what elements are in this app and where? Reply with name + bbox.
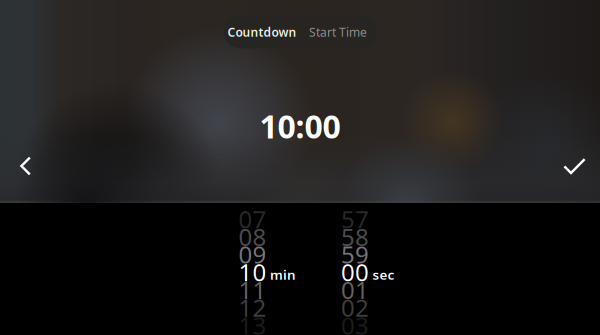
staticText: 12 bbox=[238, 291, 266, 323]
staticText: min bbox=[270, 266, 296, 283]
staticText: 58 bbox=[341, 221, 369, 253]
staticText: 11 bbox=[238, 274, 266, 306]
staticText: 59 bbox=[341, 238, 369, 270]
staticText: 57 bbox=[341, 203, 369, 235]
staticText: 08 bbox=[238, 221, 266, 253]
staticText: 00 bbox=[341, 256, 369, 288]
staticText: 01 bbox=[341, 274, 369, 306]
staticText: sec bbox=[372, 266, 394, 283]
staticText: 03 bbox=[341, 309, 369, 335]
staticText: 09 bbox=[238, 238, 266, 270]
staticText: 13 bbox=[238, 309, 266, 335]
staticText: 10 bbox=[238, 256, 266, 288]
staticText: 10:00 bbox=[259, 105, 340, 147]
button[interactable]: Countdown bbox=[224, 15, 300, 48]
button[interactable]: Back bbox=[0, 0, 52, 52]
staticText: Start Time bbox=[309, 24, 367, 40]
staticText: 07 bbox=[238, 203, 266, 235]
button[interactable]: Start Time bbox=[300, 15, 376, 48]
staticText: Countdown bbox=[227, 24, 296, 40]
staticText: 02 bbox=[341, 291, 369, 323]
button[interactable]: Confirm bbox=[0, 0, 600, 52]
